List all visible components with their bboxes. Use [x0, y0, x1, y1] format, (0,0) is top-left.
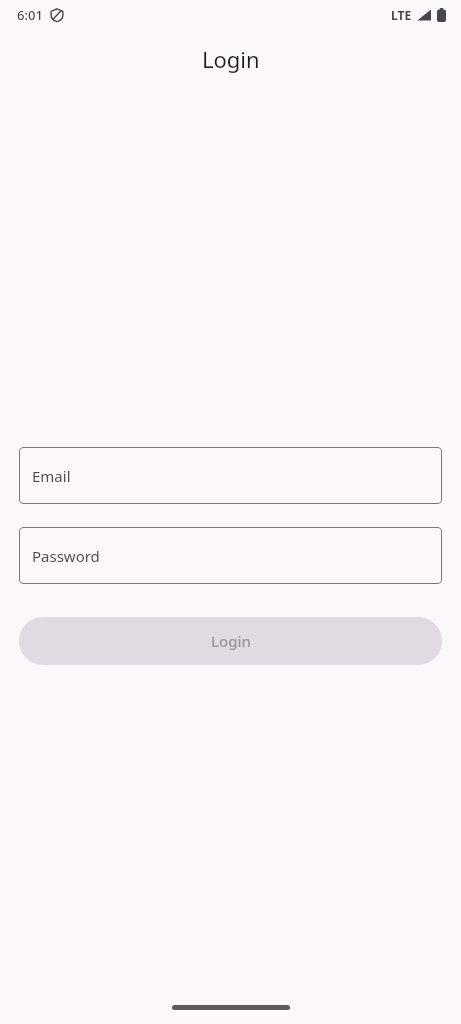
staticText: Email [32, 466, 71, 486]
button[interactable]: Login [19, 617, 442, 665]
button[interactable]: Email [19, 447, 442, 504]
staticText: LTE [391, 7, 412, 23]
button[interactable]: Password [19, 527, 442, 584]
staticText: Login [202, 44, 260, 74]
staticText: Password [32, 546, 100, 566]
staticText: Login [211, 631, 251, 651]
staticText: 6:01 [17, 6, 43, 24]
